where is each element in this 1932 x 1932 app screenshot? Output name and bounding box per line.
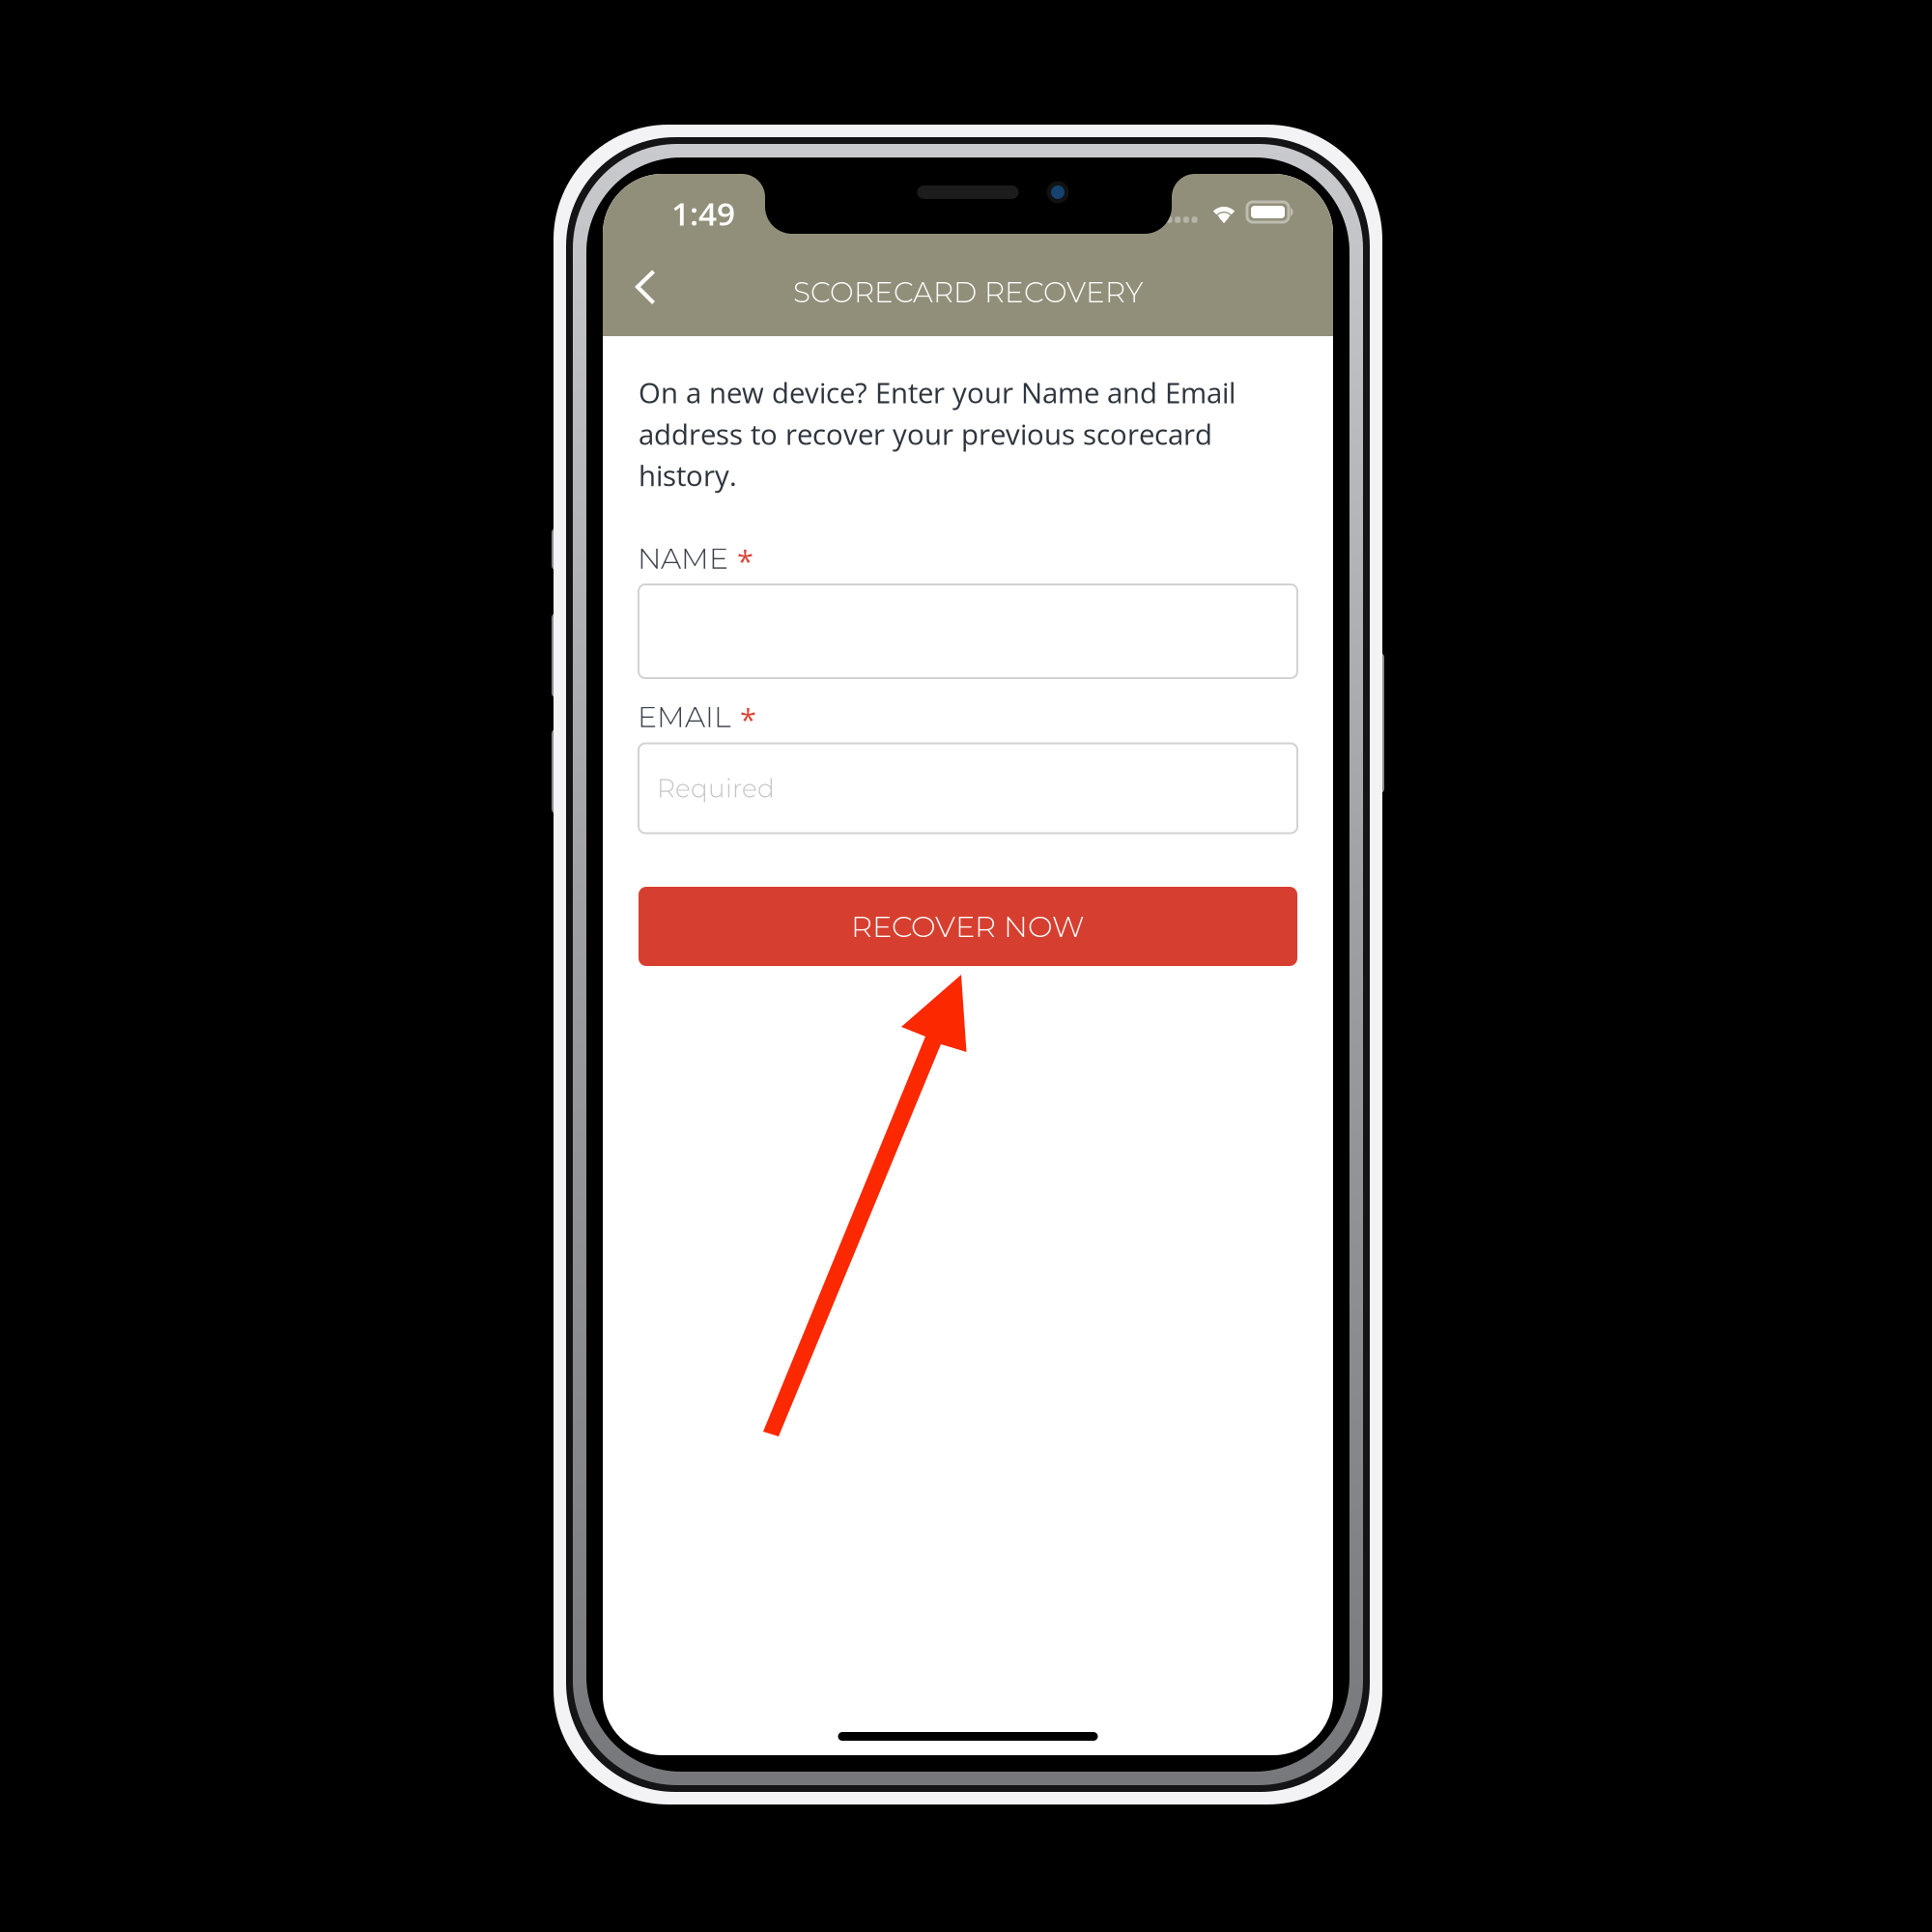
staticText: *: [740, 699, 756, 739]
button[interactable]: Name: [639, 584, 1297, 678]
staticText: EMAIL: [638, 699, 731, 734]
staticText: RECOVER NOW: [851, 908, 1085, 944]
staticText: SCORECARD RECOVERY: [793, 275, 1143, 310]
staticText: NAME: [638, 541, 728, 576]
staticText: Required: [657, 773, 775, 804]
button[interactable]: RECOVER NOW: [639, 887, 1297, 966]
button[interactable]: Back: [604, 245, 687, 328]
staticText: *: [737, 540, 753, 580]
button[interactable]: Required: [639, 743, 1297, 833]
staticText: On a new device? Enter your Name and Ema…: [639, 373, 1236, 494]
staticText: 1:49: [671, 191, 735, 235]
